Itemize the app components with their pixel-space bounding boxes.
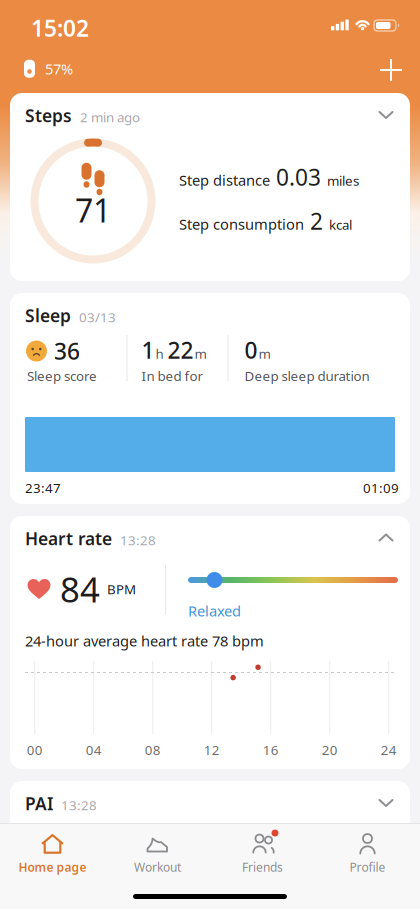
staticText: 22: [167, 335, 193, 365]
staticText: Heart rate: [25, 527, 112, 550]
staticText: 71: [75, 189, 111, 231]
staticText: 24-hour average heart rate 78 bpm: [25, 631, 264, 650]
staticText: Sleep: [25, 304, 71, 327]
staticText: 36: [54, 336, 80, 366]
staticText: 0: [244, 335, 257, 365]
button[interactable]: Sleep: [10, 293, 410, 504]
button[interactable]: Home page: [0, 823, 105, 885]
staticText: 13:28: [61, 796, 97, 814]
button[interactable]: Heart rate: [10, 516, 410, 769]
button[interactable]: Device battery 57%: [24, 59, 73, 78]
staticText: In bed for: [141, 367, 203, 385]
staticText: 0.03: [276, 162, 321, 192]
staticText: 57%: [45, 59, 73, 78]
staticText: 20: [322, 741, 338, 759]
staticText: Sleep score: [27, 367, 97, 385]
staticText: Step consumption: [179, 214, 304, 234]
button[interactable]: Steps: [10, 93, 410, 281]
staticText: Deep sleep duration: [244, 367, 369, 385]
staticText: 03/13: [79, 308, 116, 326]
staticText: 2: [310, 206, 323, 236]
staticText: 1: [141, 335, 154, 365]
staticText: 08: [145, 741, 161, 759]
staticText: 12: [204, 741, 220, 759]
staticText: Friends: [242, 859, 283, 875]
staticText: Workout: [134, 859, 181, 875]
staticText: PAI: [25, 792, 53, 815]
staticText: BPM: [107, 580, 136, 598]
staticText: 00: [27, 741, 43, 759]
button[interactable]: Profile: [315, 823, 420, 885]
staticText: 04: [86, 741, 102, 759]
staticText: 24: [381, 741, 397, 759]
staticText: Relaxed: [188, 601, 241, 620]
button[interactable]: Workout: [105, 823, 210, 885]
button[interactable]: Add: [380, 59, 402, 81]
staticText: m: [194, 345, 206, 362]
button[interactable]: PAI: [10, 781, 410, 909]
staticText: m: [258, 345, 270, 362]
staticText: Home page: [18, 859, 86, 875]
staticText: 15:02: [31, 13, 89, 43]
staticText: Step distance: [179, 170, 270, 190]
staticText: 13:28: [120, 531, 156, 549]
staticText: Profile: [349, 859, 385, 875]
staticText: kcal: [329, 216, 352, 233]
staticText: Steps: [25, 104, 72, 127]
button[interactable]: Friends: [210, 823, 315, 885]
staticText: 23:47: [25, 479, 61, 497]
staticText: miles: [327, 172, 359, 189]
staticText: 16: [263, 741, 279, 759]
staticText: 01:09: [363, 479, 399, 497]
staticText: 2 min ago: [80, 108, 140, 126]
staticText: 84: [60, 566, 100, 612]
staticText: h: [155, 345, 166, 362]
